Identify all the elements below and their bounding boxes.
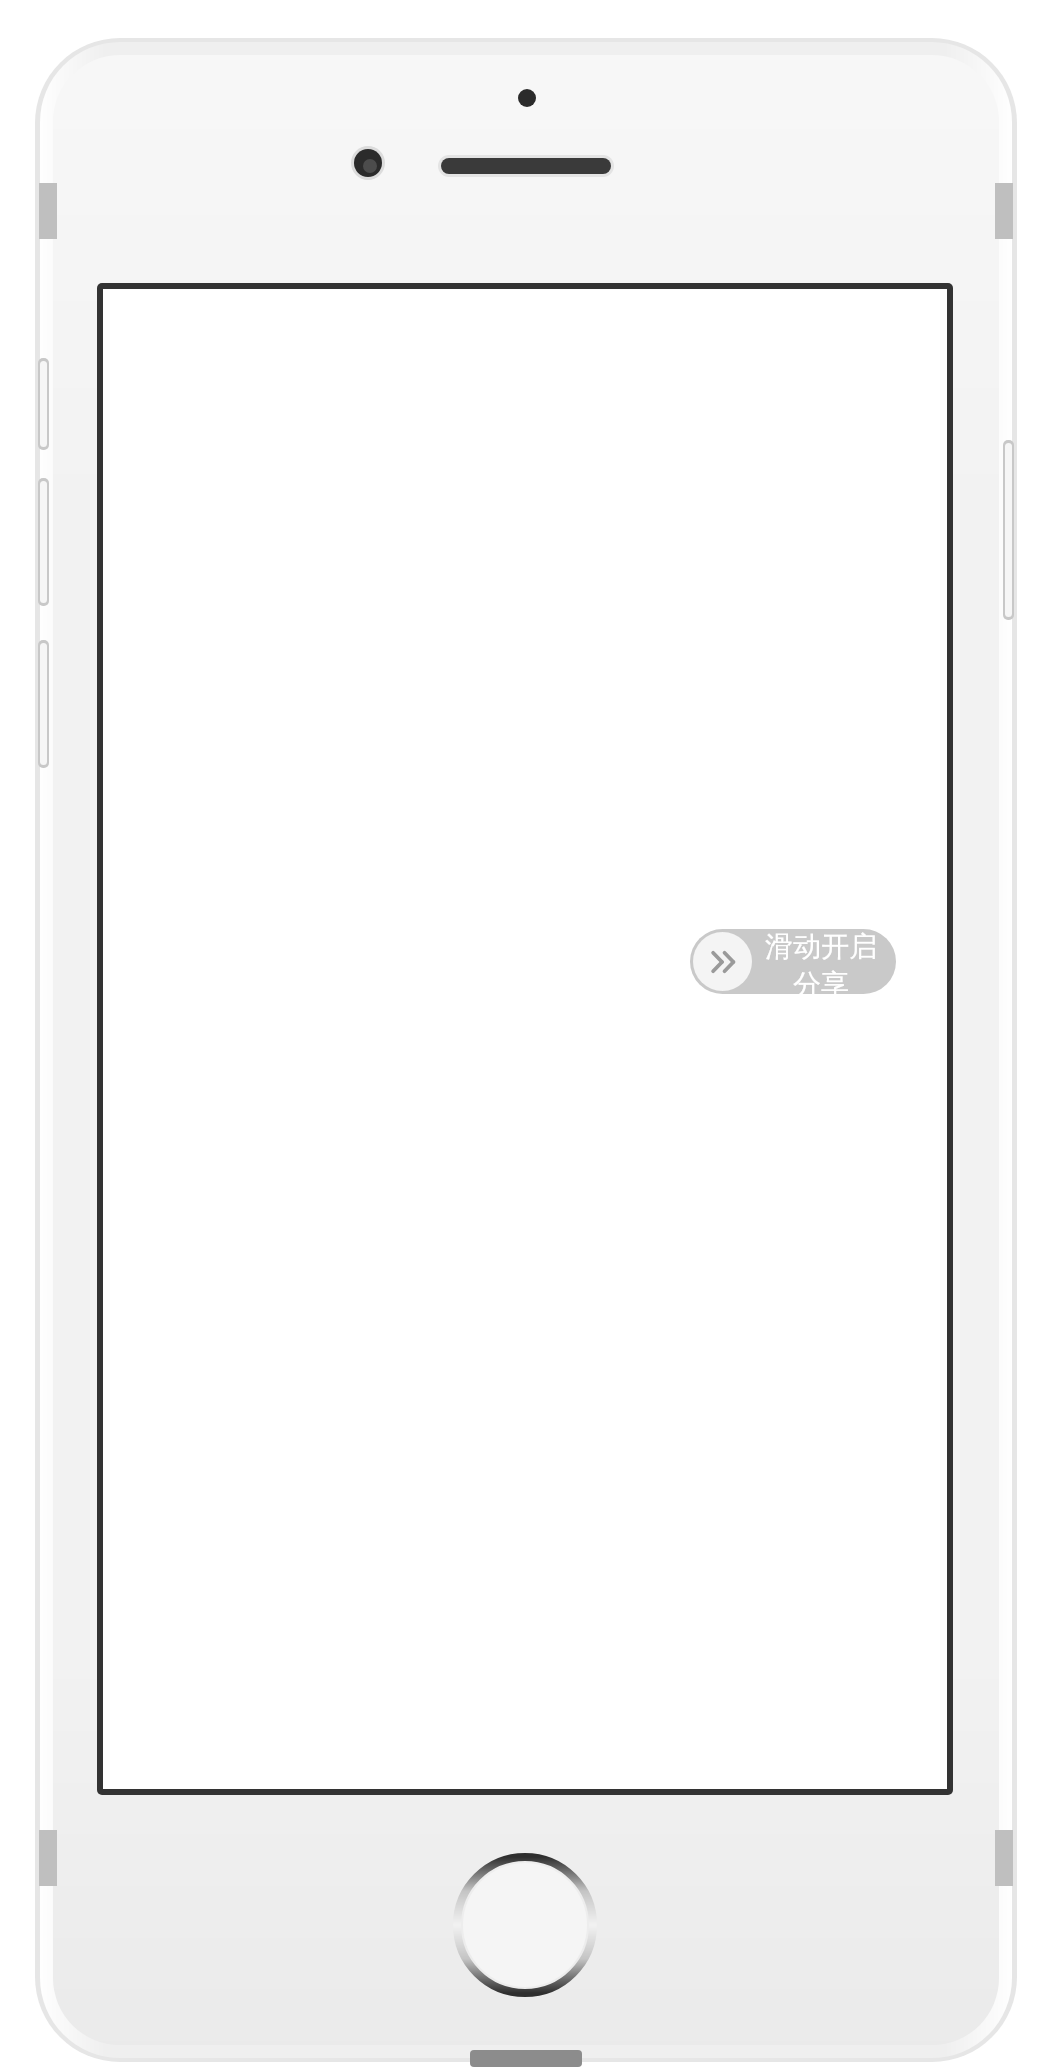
button[interactable]: 滑动开启分享 <box>690 929 896 994</box>
staticText: 滑动开启分享 <box>752 929 890 994</box>
